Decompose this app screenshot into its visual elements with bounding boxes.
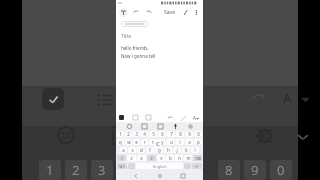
button[interactable]: 3 xyxy=(91,160,113,180)
button[interactable]: y xyxy=(158,139,166,145)
button[interactable]: v xyxy=(157,155,165,161)
button[interactable]: z xyxy=(127,155,136,161)
button[interactable]: Back xyxy=(132,172,140,180)
button[interactable]: List xyxy=(95,90,115,110)
button[interactable]: d xyxy=(137,147,145,153)
button[interactable]: Emoji xyxy=(55,124,77,146)
button[interactable]: Back xyxy=(119,8,128,17)
staticText: , xyxy=(131,164,133,169)
button[interactable]: s xyxy=(128,147,136,153)
button[interactable]: q xyxy=(117,139,124,145)
button[interactable]: b xyxy=(166,155,174,161)
button[interactable]: Comma xyxy=(128,163,135,169)
button[interactable]: Undo xyxy=(132,8,140,16)
button[interactable]: 9 xyxy=(185,131,193,137)
staticText: z xyxy=(130,155,133,161)
button[interactable]: j xyxy=(173,147,181,153)
staticText: 0 xyxy=(197,131,200,137)
staticText: i xyxy=(179,139,181,145)
staticText: b xyxy=(169,155,172,161)
button[interactable]: n xyxy=(175,155,183,161)
button[interactable]: 1 xyxy=(117,131,124,137)
button[interactable]: u xyxy=(167,139,175,145)
button[interactable]: 9 xyxy=(244,160,266,180)
button[interactable]: Text size xyxy=(277,88,297,108)
staticText: 8 xyxy=(225,161,233,179)
button[interactable]: 2 xyxy=(125,131,132,137)
button[interactable]: t xyxy=(149,139,157,145)
button[interactable]: h xyxy=(164,147,172,153)
button[interactable]: Text style xyxy=(192,114,200,122)
button[interactable]: 8 xyxy=(176,131,184,137)
button[interactable]: Enter xyxy=(192,163,202,169)
button[interactable]: Recents xyxy=(179,172,187,180)
staticText: l xyxy=(194,147,196,153)
button[interactable]: 3 xyxy=(133,131,140,137)
staticText: q xyxy=(119,139,122,145)
button[interactable]: Backspace xyxy=(193,155,202,161)
staticText: hello friends, xyxy=(121,45,149,51)
staticText: v xyxy=(160,155,163,161)
button[interactable]: l xyxy=(191,147,199,153)
button[interactable]: i xyxy=(176,139,184,145)
button[interactable]: 4 xyxy=(141,131,148,137)
button[interactable]: k xyxy=(182,147,190,153)
staticText: English xyxy=(153,164,167,169)
button[interactable]: Checkbox xyxy=(42,88,64,110)
staticText: Now i gonna tell xyxy=(121,53,156,59)
staticText: Save xyxy=(164,9,176,16)
button[interactable]: Shift xyxy=(117,155,126,161)
staticText: u xyxy=(170,139,173,145)
button[interactable]: 6 xyxy=(158,131,166,137)
button[interactable]: Format xyxy=(146,115,151,120)
button[interactable]: GIF xyxy=(141,123,147,129)
button[interactable]: Save xyxy=(163,9,177,16)
button[interactable]: 0 xyxy=(194,131,202,137)
button[interactable]: Voice xyxy=(172,123,178,129)
button[interactable]: Symbols xyxy=(117,163,127,169)
button[interactable]: Space xyxy=(136,163,183,169)
button[interactable]: Format xyxy=(133,115,138,120)
button[interactable]: e xyxy=(133,139,140,145)
button[interactable]: r xyxy=(141,139,148,145)
button[interactable]: More xyxy=(298,92,312,106)
button[interactable]: Settings xyxy=(254,125,276,147)
staticText: 7 xyxy=(170,131,173,137)
button[interactable]: Redo xyxy=(144,8,152,16)
button[interactable]: Checkbox xyxy=(119,115,124,120)
button[interactable]: x xyxy=(137,155,146,161)
button[interactable]: Undo xyxy=(167,115,173,121)
button[interactable]: m xyxy=(184,155,192,161)
button[interactable]: Clipboard xyxy=(157,123,163,129)
button[interactable]: Attach xyxy=(181,8,189,16)
staticText: 8 xyxy=(179,131,182,137)
button[interactable]: Redo xyxy=(180,115,186,121)
button[interactable] xyxy=(121,21,148,27)
staticText: ⌫ xyxy=(195,156,201,161)
button[interactable]: 2 xyxy=(65,160,87,180)
button[interactable]: 5 xyxy=(149,131,157,137)
button[interactable]: g xyxy=(155,147,163,153)
staticText: s xyxy=(131,147,134,153)
staticText: !#1 xyxy=(119,164,125,169)
button[interactable]: 7 xyxy=(167,131,175,137)
button[interactable]: More options xyxy=(192,8,200,16)
button[interactable]: w xyxy=(125,139,132,145)
button[interactable]: 1 xyxy=(39,160,61,180)
button[interactable]: 0 xyxy=(270,160,292,180)
button[interactable]: Sticker xyxy=(110,124,132,146)
button[interactable]: p xyxy=(194,139,202,145)
button[interactable]: a xyxy=(120,147,127,153)
button[interactable]: Period xyxy=(184,163,191,169)
staticText: a xyxy=(122,147,125,153)
button[interactable]: Settings xyxy=(187,123,193,129)
button[interactable]: c xyxy=(147,155,156,161)
staticText: ↵ xyxy=(195,164,199,169)
button[interactable]: Home xyxy=(156,172,164,180)
button[interactable]: f xyxy=(146,147,154,153)
button[interactable]: Emoji xyxy=(126,123,132,129)
button[interactable]: o xyxy=(185,139,193,145)
button[interactable]: Undo xyxy=(250,90,268,108)
button[interactable]: Collapse xyxy=(296,130,310,144)
button[interactable]: 8 xyxy=(218,160,240,180)
